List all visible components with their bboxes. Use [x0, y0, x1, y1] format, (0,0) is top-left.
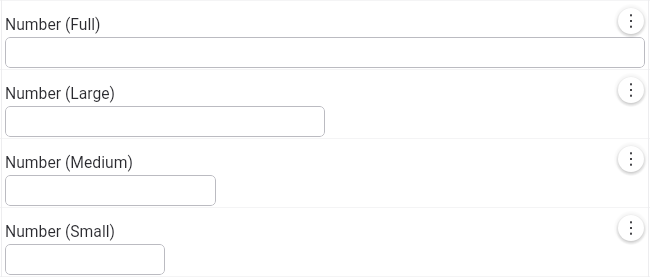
staticText: Number (Full) [5, 15, 101, 33]
button[interactable] [5, 106, 325, 137]
button[interactable] [5, 175, 216, 206]
button[interactable]: More options [614, 73, 648, 107]
button[interactable] [5, 37, 645, 68]
button[interactable]: More options [614, 211, 648, 245]
button[interactable] [5, 244, 165, 275]
button[interactable]: More options [614, 142, 648, 176]
staticText: Number (Medium) [5, 153, 133, 171]
staticText: Number (Large) [5, 84, 116, 102]
button[interactable]: More options [614, 4, 648, 38]
staticText: Number (Small) [5, 222, 115, 240]
